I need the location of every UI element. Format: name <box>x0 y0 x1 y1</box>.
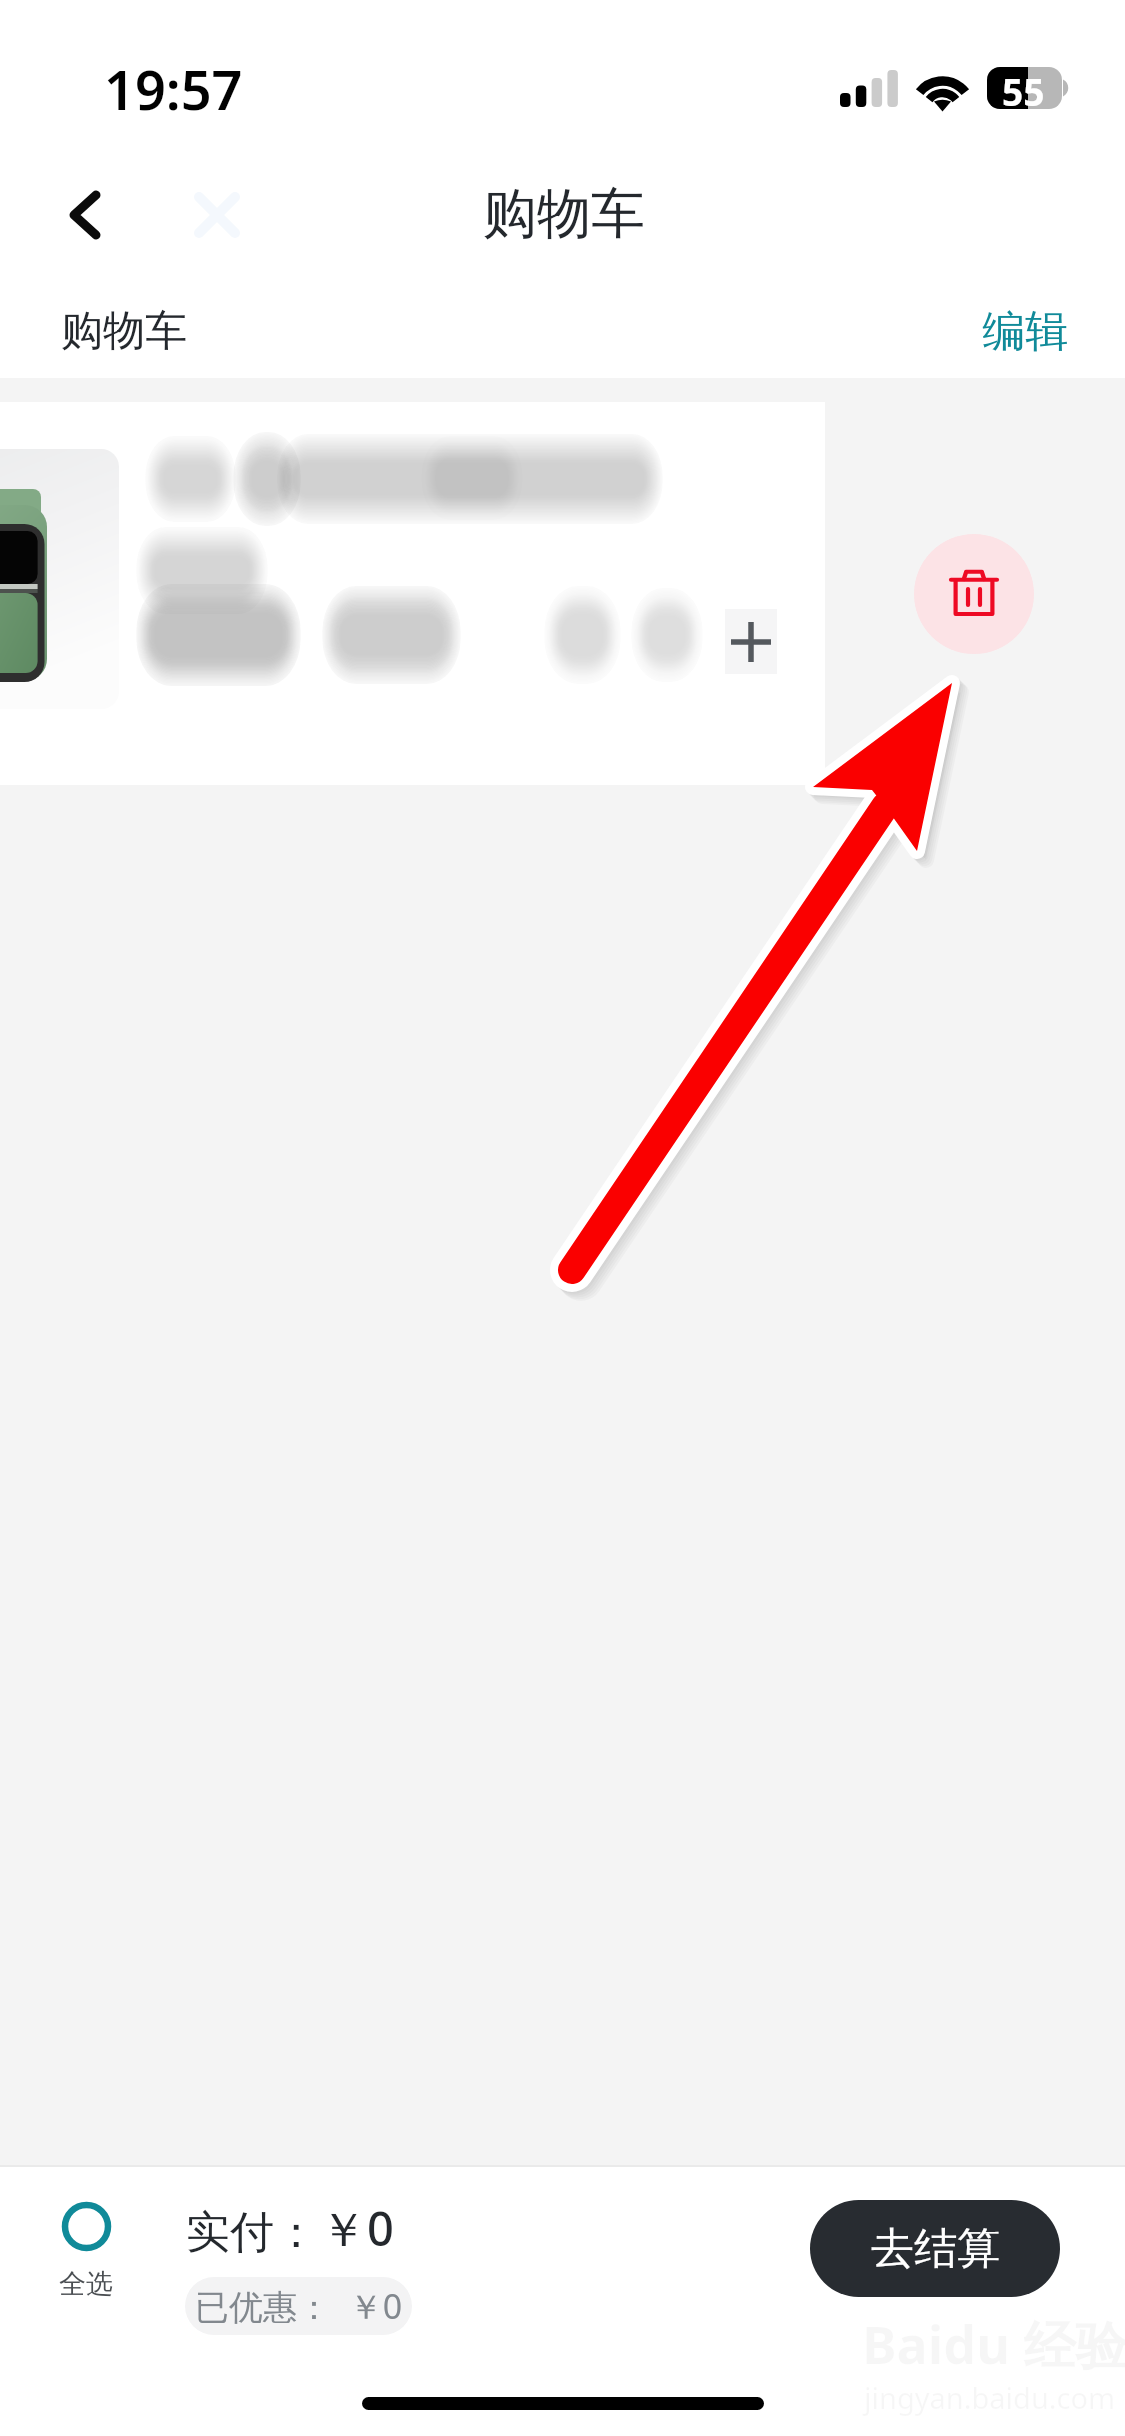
button[interactable]: 编辑 <box>964 289 1086 375</box>
button[interactable]: Increase quantity <box>725 609 777 674</box>
button[interactable]: Delete <box>914 534 1034 654</box>
button[interactable]: Close <box>167 165 267 265</box>
staticText: 全选 <box>59 2267 113 2301</box>
staticText: 编辑 <box>982 305 1068 359</box>
staticText: 购物车 <box>483 180 645 248</box>
staticText: 19:57 <box>104 52 243 126</box>
button[interactable]: Increase quantity <box>0 402 825 785</box>
staticText: 去结算 <box>871 2222 1000 2276</box>
button[interactable]: 全选 <box>55 2198 117 2305</box>
button[interactable]: Back <box>35 165 135 265</box>
staticText: ￥0 <box>320 2196 394 2260</box>
staticText: Baidu 经验 <box>862 2308 1125 2379</box>
staticText: 已优惠： ￥0 <box>195 2283 403 2329</box>
staticText: 55 <box>1002 66 1045 108</box>
button[interactable]: 去结算 <box>810 2200 1060 2297</box>
staticText: 购物车 <box>61 305 187 358</box>
staticText: 实付： <box>186 2205 318 2260</box>
